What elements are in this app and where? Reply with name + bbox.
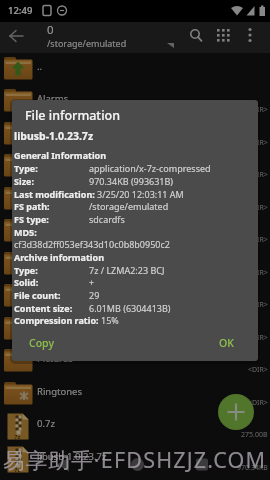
staticText: Last modification: (14, 188, 95, 200)
staticText: <DIR> (248, 333, 268, 343)
staticText: Notifications (37, 320, 94, 333)
staticText: + (89, 276, 95, 288)
button[interactable]: Movies (0, 249, 270, 281)
button[interactable] (211, 24, 233, 46)
button[interactable]: Notifications (0, 314, 270, 346)
staticText: File count: (14, 289, 87, 301)
staticText: 12:49 (8, 4, 33, 17)
staticText: Pictures (37, 352, 73, 365)
staticText: Type: (14, 162, 87, 174)
staticText: Documents (37, 190, 89, 203)
staticText: 易享助手·EFDSHZJZ.COM (3, 445, 267, 474)
staticText: 7z (14, 466, 21, 474)
staticText: /storage/emulated (47, 37, 127, 49)
staticText: <DIR> (248, 268, 268, 278)
staticText: <DIR> (248, 203, 268, 213)
staticText: 29 (89, 289, 100, 301)
staticText: <DIR> (248, 170, 268, 180)
button[interactable]: Copy (13, 331, 69, 355)
staticText: 6.01MB (6304413B) (89, 302, 171, 314)
staticText: cf3d38d2ff053ef343d10c0b8b0950c2 (14, 238, 170, 250)
button[interactable] (185, 24, 207, 46)
button[interactable] (240, 24, 262, 46)
button[interactable]: Download (0, 216, 270, 248)
button[interactable]: OK (202, 331, 250, 355)
staticText: FS path: (14, 200, 87, 212)
button[interactable] (124, 450, 152, 478)
button[interactable]: Android (0, 119, 270, 151)
staticText: 275.00B (241, 430, 268, 440)
button[interactable]: 7z (0, 444, 270, 476)
button[interactable]: Music (0, 281, 270, 313)
staticText: 970.34KB (237, 463, 268, 473)
staticText: OK (219, 336, 234, 350)
staticText: 7z / LZMA2:23 BCJ (89, 264, 165, 276)
button[interactable]: Alarms (0, 86, 270, 118)
staticText: Movies (37, 255, 69, 268)
button[interactable]: Documents (0, 184, 270, 216)
button[interactable] (190, 450, 218, 478)
button[interactable]: .. (0, 54, 270, 86)
staticText: 970.34KB (993631B) (89, 175, 174, 187)
staticText: 0.7z (37, 417, 55, 430)
button[interactable]: Ringtones (0, 379, 270, 411)
staticText: Archive information (14, 251, 105, 263)
staticText: <DIR> (248, 398, 268, 408)
staticText: 3/25/20 12:03:11 AM (97, 188, 184, 200)
staticText: application/x-7z-compressed (89, 162, 211, 174)
staticText: Compression ratio: (14, 314, 99, 326)
staticText: Copy (29, 336, 54, 350)
button[interactable]: DCIM (0, 151, 270, 183)
button[interactable] (50, 450, 78, 478)
staticText: .. (37, 60, 43, 73)
staticText: MD5: (14, 226, 37, 238)
button[interactable]: 7z (0, 411, 270, 443)
staticText: sdcardfs (89, 213, 125, 225)
staticText: libusb-1.0.23.7z (37, 450, 107, 463)
staticText: /storage/emulated (89, 200, 169, 212)
staticText: <DIR> (248, 235, 268, 245)
staticText: Solid: (14, 276, 87, 288)
staticText: Music (37, 287, 64, 300)
staticText: libusb-1.0.23.7z (14, 129, 94, 143)
staticText: Ringtones (37, 385, 83, 398)
staticText: DCIM (37, 157, 62, 170)
staticText: <DIR> (248, 138, 268, 148)
staticText: 15% (101, 314, 119, 326)
staticText: Android (37, 125, 73, 138)
button[interactable] (218, 394, 254, 430)
staticText: <DIR> (248, 105, 268, 115)
button[interactable]: Pictures (0, 346, 270, 378)
button[interactable] (4, 26, 28, 50)
staticText: <DIR> (248, 300, 268, 310)
staticText: 0 (47, 22, 54, 38)
staticText: 7z (14, 433, 21, 441)
staticText: FS type: (14, 213, 87, 225)
staticText: General Information (14, 149, 107, 161)
staticText: <DIR> (248, 365, 268, 375)
staticText: File information (25, 107, 121, 124)
staticText: Type: (14, 264, 87, 276)
staticText: Content size: (14, 302, 87, 314)
staticText: Size: (14, 175, 87, 187)
staticText: Alarms (37, 92, 69, 105)
staticText: Download (37, 222, 83, 235)
